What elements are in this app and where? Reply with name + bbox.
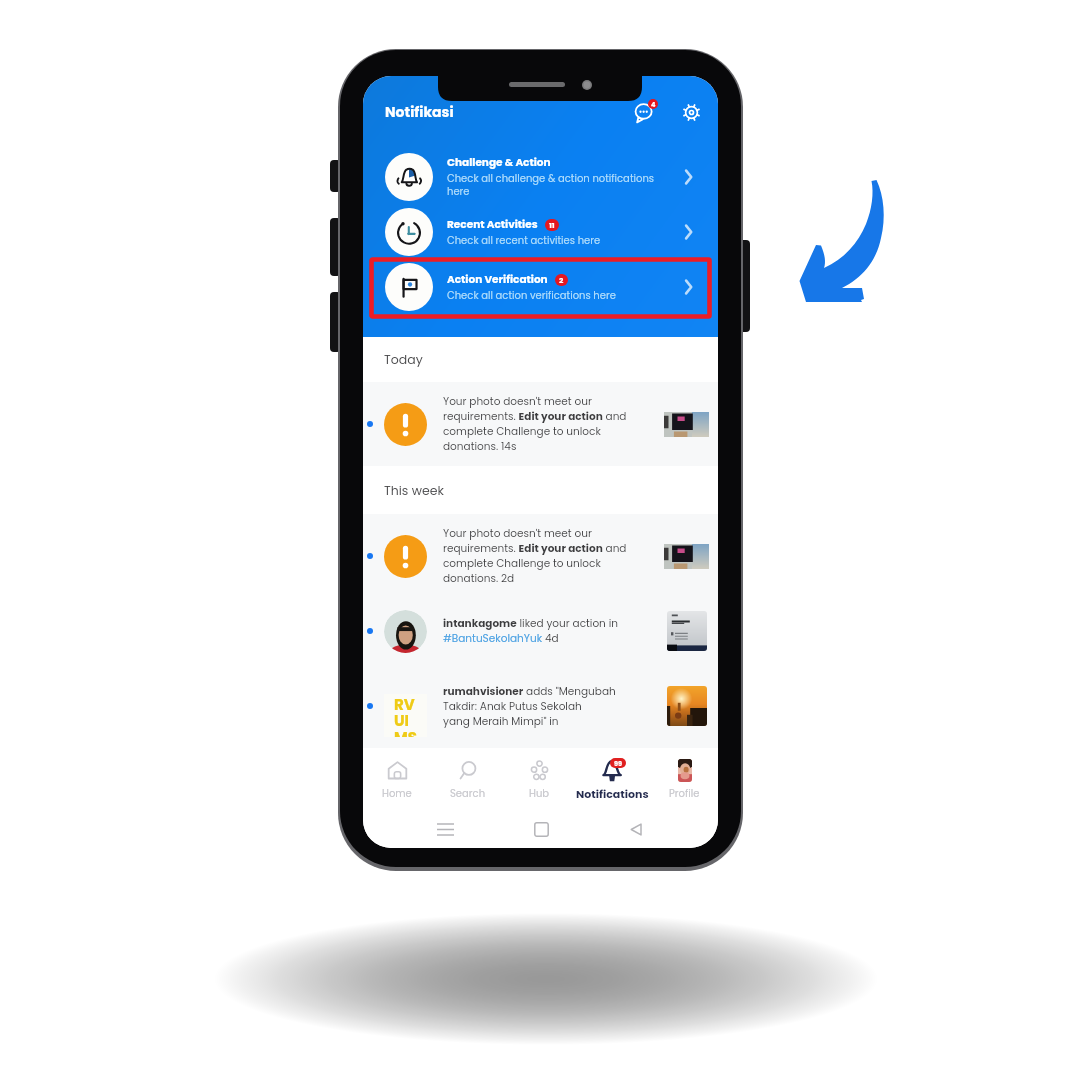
staticText: Your photo doesn't meet our requirements…: [443, 526, 635, 586]
button[interactable]: Home: [528, 816, 554, 842]
button[interactable]: Profile: [644, 754, 718, 810]
button[interactable]: Home: [363, 754, 437, 810]
button[interactable]: Your photo doesn't meet our requirements…: [363, 514, 718, 598]
staticText: rumahvisioner adds "Mengubah Takdir: Ana…: [443, 684, 616, 729]
button[interactable]: Search: [428, 754, 508, 810]
staticText: Notifications: [576, 786, 649, 801]
staticText: Challenge & Action: [447, 155, 551, 170]
staticText: This week: [384, 482, 444, 499]
button[interactable]: Back: [623, 816, 649, 842]
staticText: Search: [450, 786, 486, 800]
staticText: Notifikasi: [385, 102, 454, 122]
button[interactable]: Your photo doesn't meet our requirements…: [363, 382, 718, 466]
staticText: Hub: [529, 786, 550, 800]
button[interactable]: RV UI MS: [363, 664, 718, 748]
staticText: Check all challenge & action notificatio…: [447, 171, 657, 198]
staticText: 99: [614, 759, 622, 768]
button[interactable]: Recent Activities: [363, 207, 718, 256]
staticText: Action Verification: [447, 272, 548, 287]
staticText: 2: [559, 275, 564, 285]
button[interactable]: Action Verification: [363, 262, 718, 311]
staticText: Check all action verifications here: [447, 288, 616, 302]
button[interactable]: Challenge & Action: [363, 152, 718, 201]
staticText: Your photo doesn't meet our requirements…: [443, 394, 635, 454]
staticText: RV UI MS: [394, 694, 417, 737]
staticText: intankagome liked your action in #BantuS…: [443, 616, 618, 646]
staticText: Profile: [669, 786, 700, 800]
button[interactable]: Hub: [499, 754, 579, 810]
staticText: 4: [651, 100, 656, 109]
button[interactable]: Messages: [633, 99, 661, 125]
staticText: Home: [382, 786, 412, 800]
staticText: Recent Activities: [447, 217, 538, 232]
staticText: Today: [384, 351, 423, 368]
button[interactable]: Settings: [679, 100, 703, 124]
staticText: Check all recent activities here: [447, 233, 601, 247]
button[interactable]: Recents: [432, 816, 458, 842]
button[interactable]: intankagome liked your action in #BantuS…: [363, 598, 718, 664]
staticText: 11: [549, 220, 555, 230]
button[interactable]: 99: [572, 754, 652, 810]
